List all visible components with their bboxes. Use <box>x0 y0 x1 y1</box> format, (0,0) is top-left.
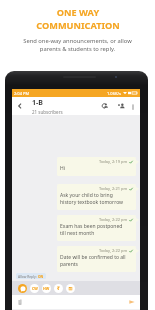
button[interactable]: Chat <box>18 284 27 293</box>
staticText: 1.06K/s <box>107 91 121 96</box>
button[interactable]: Back <box>12 97 28 115</box>
staticText: ₹ <box>57 285 60 292</box>
staticText: Today, 2:19 pm <box>99 159 128 164</box>
staticText: Today, 2:22 pm <box>99 248 128 253</box>
staticText: Hi <box>60 165 65 172</box>
staticText: Today, 2:21 pm <box>99 186 128 191</box>
button[interactable]: Allow Reply: <box>16 273 46 279</box>
button[interactable]: Homework <box>42 284 51 293</box>
staticText: 1-B <box>32 98 43 108</box>
staticText: 21 subscribers <box>32 109 63 115</box>
button[interactable]: Reports <box>66 284 75 293</box>
button[interactable]: Switch account <box>99 100 111 112</box>
button[interactable]: More options <box>127 101 138 112</box>
button[interactable]: Fees <box>54 284 63 293</box>
staticText: 2:04 PM <box>14 91 30 96</box>
button[interactable]: Send <box>129 299 135 305</box>
staticText: Today, 2:22 pm <box>99 217 128 222</box>
staticText: ON <box>38 274 44 278</box>
staticText: Send one-way announcements, or allow par… <box>23 37 132 53</box>
staticText: Exam has been postponed till next month <box>60 223 123 237</box>
staticText: Date will be confirmed to all parents <box>60 254 126 268</box>
staticText: CW <box>32 286 38 291</box>
button[interactable]: Classwork <box>30 284 39 293</box>
staticText: Ask your child to bring history textbook… <box>60 192 124 206</box>
staticText: HW <box>43 286 50 291</box>
staticText: ONE WAY COMMUNICATION <box>36 6 120 32</box>
staticText: Allow Reply: <box>18 274 38 278</box>
button[interactable]: Add member <box>115 100 127 112</box>
button[interactable]: Attach <box>18 298 22 306</box>
